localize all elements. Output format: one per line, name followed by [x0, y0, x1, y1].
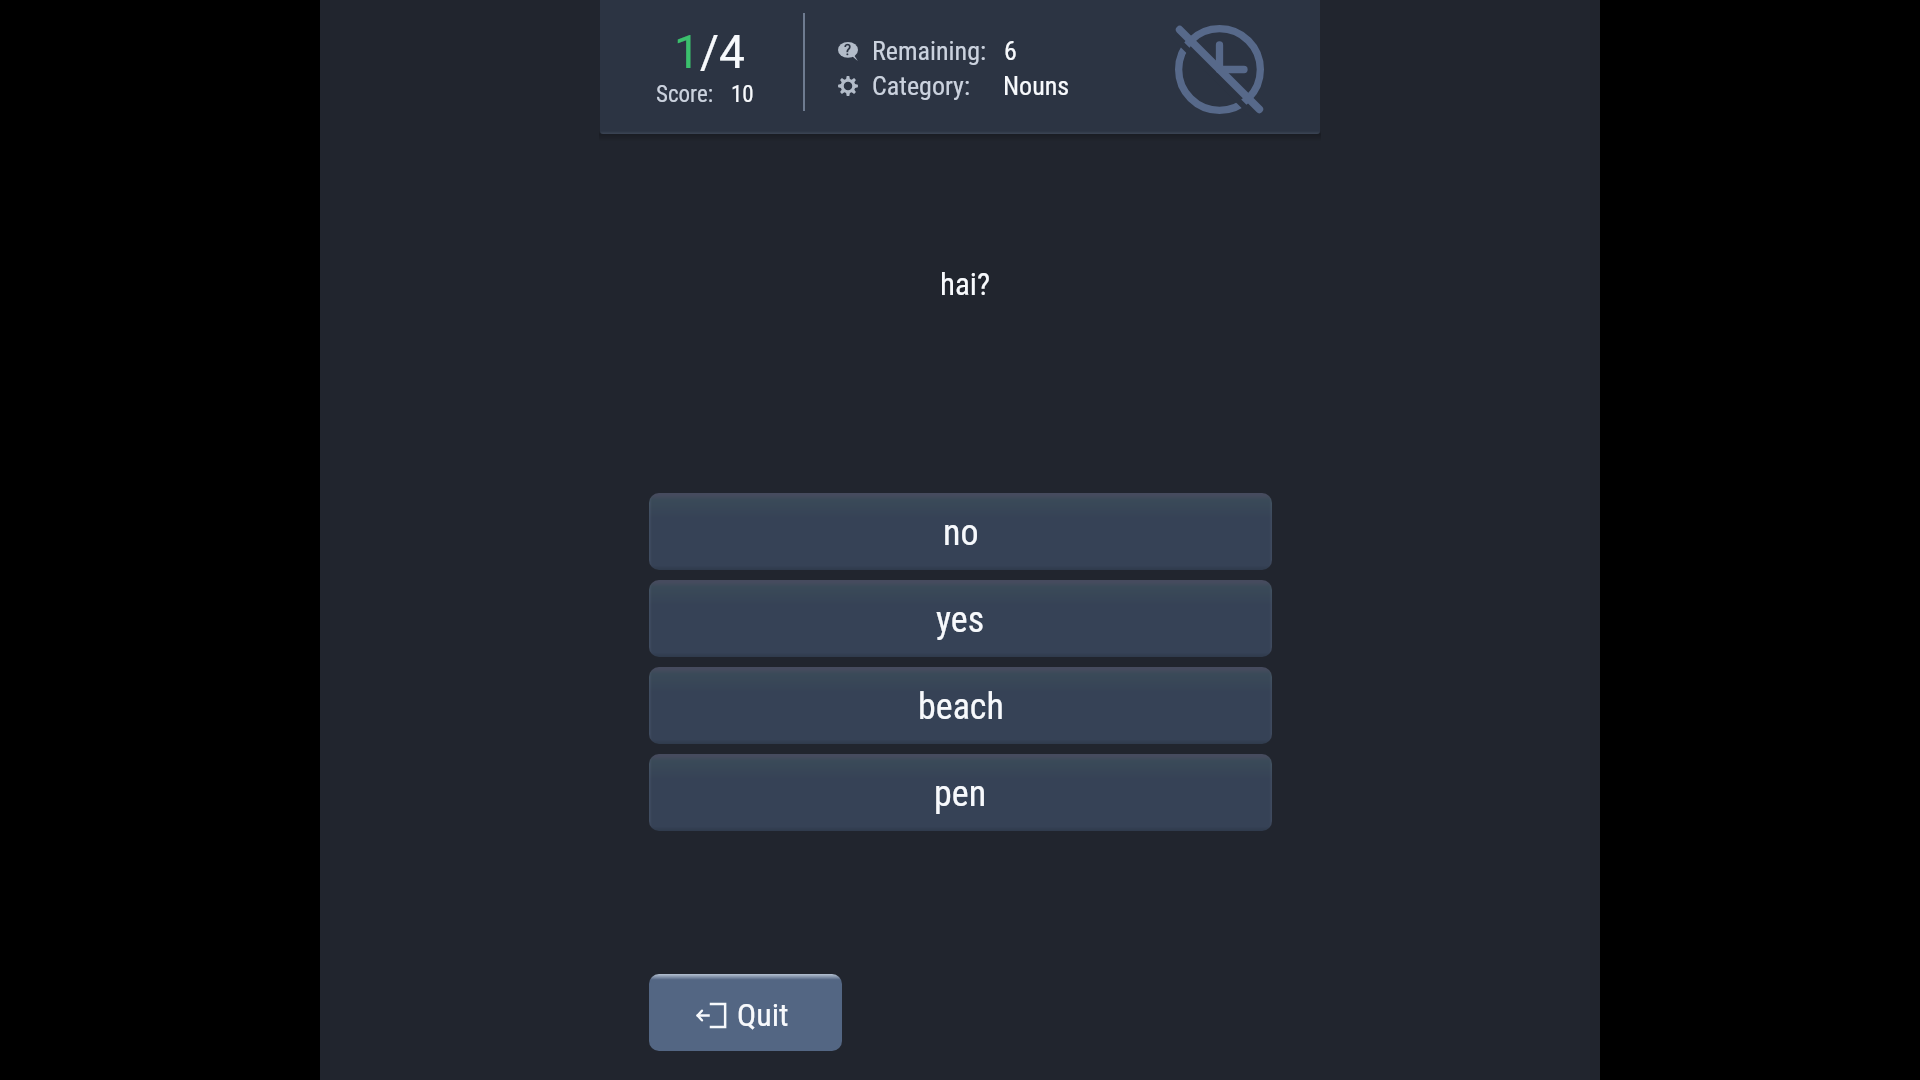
button[interactable]: yes: [649, 580, 1272, 657]
staticText: 10: [731, 81, 754, 108]
staticText: hai?: [325, 266, 1605, 302]
button[interactable]: Timer disabled: [1171, 21, 1267, 117]
staticText: Remaining:: [872, 36, 987, 66]
staticText: ?: [844, 41, 852, 59]
staticText: pen: [934, 773, 987, 815]
staticText: Quit: [737, 996, 789, 1034]
staticText: yes: [936, 599, 985, 641]
staticText: Nouns: [1003, 71, 1070, 101]
staticText: /4: [700, 25, 745, 79]
staticText: Category:: [872, 71, 970, 101]
button[interactable]: pen: [649, 754, 1272, 831]
staticText: beach: [918, 686, 1004, 728]
staticText: 1: [674, 25, 700, 79]
button[interactable]: Quit: [649, 974, 842, 1051]
staticText: Score:: [656, 81, 714, 108]
button[interactable]: beach: [649, 667, 1272, 744]
staticText: 6: [1004, 36, 1017, 66]
button[interactable]: no: [649, 493, 1272, 570]
staticText: no: [943, 512, 979, 554]
